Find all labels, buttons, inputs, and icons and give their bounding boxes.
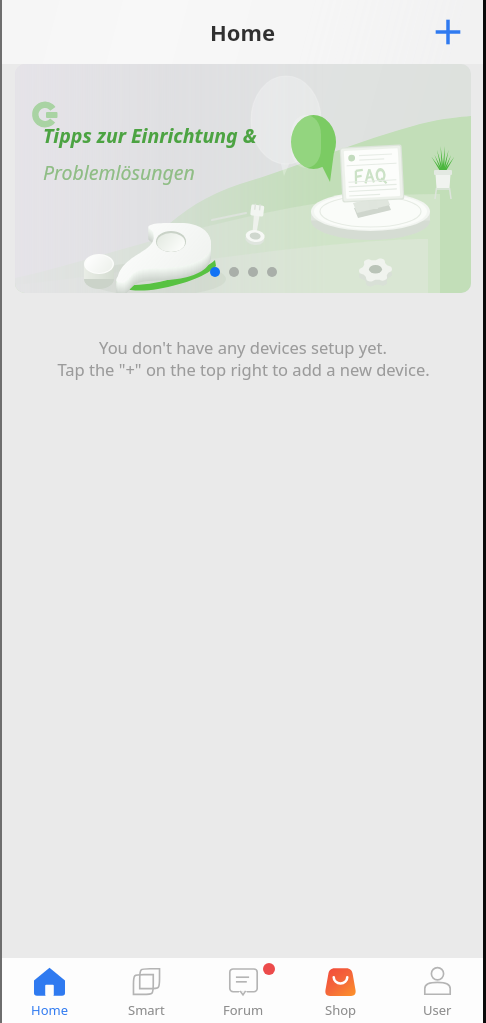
staticText: Home	[210, 17, 276, 47]
button[interactable]: Add device	[426, 10, 470, 54]
staticText: You don't have any devices setup yet.	[99, 336, 387, 358]
staticText: Forum	[223, 1001, 264, 1019]
button[interactable]: Smart	[98, 958, 195, 1023]
button[interactable]: Tipps zur Einrichtung &	[15, 64, 471, 293]
staticText: Home	[31, 1001, 68, 1019]
staticText: User	[423, 1001, 452, 1019]
staticText: Shop	[325, 1001, 357, 1019]
staticText: Tipps zur Einrichtung &	[43, 122, 257, 149]
button[interactable]: Shop	[292, 958, 389, 1023]
button[interactable]: Home	[0, 958, 98, 1023]
button[interactable]: Forum	[195, 958, 292, 1023]
button[interactable]: User	[389, 958, 486, 1023]
staticText: Problemlösungen	[43, 159, 195, 186]
staticText: Tap the "+" on the top right to add a ne…	[57, 358, 430, 380]
staticText: Smart	[128, 1001, 165, 1019]
